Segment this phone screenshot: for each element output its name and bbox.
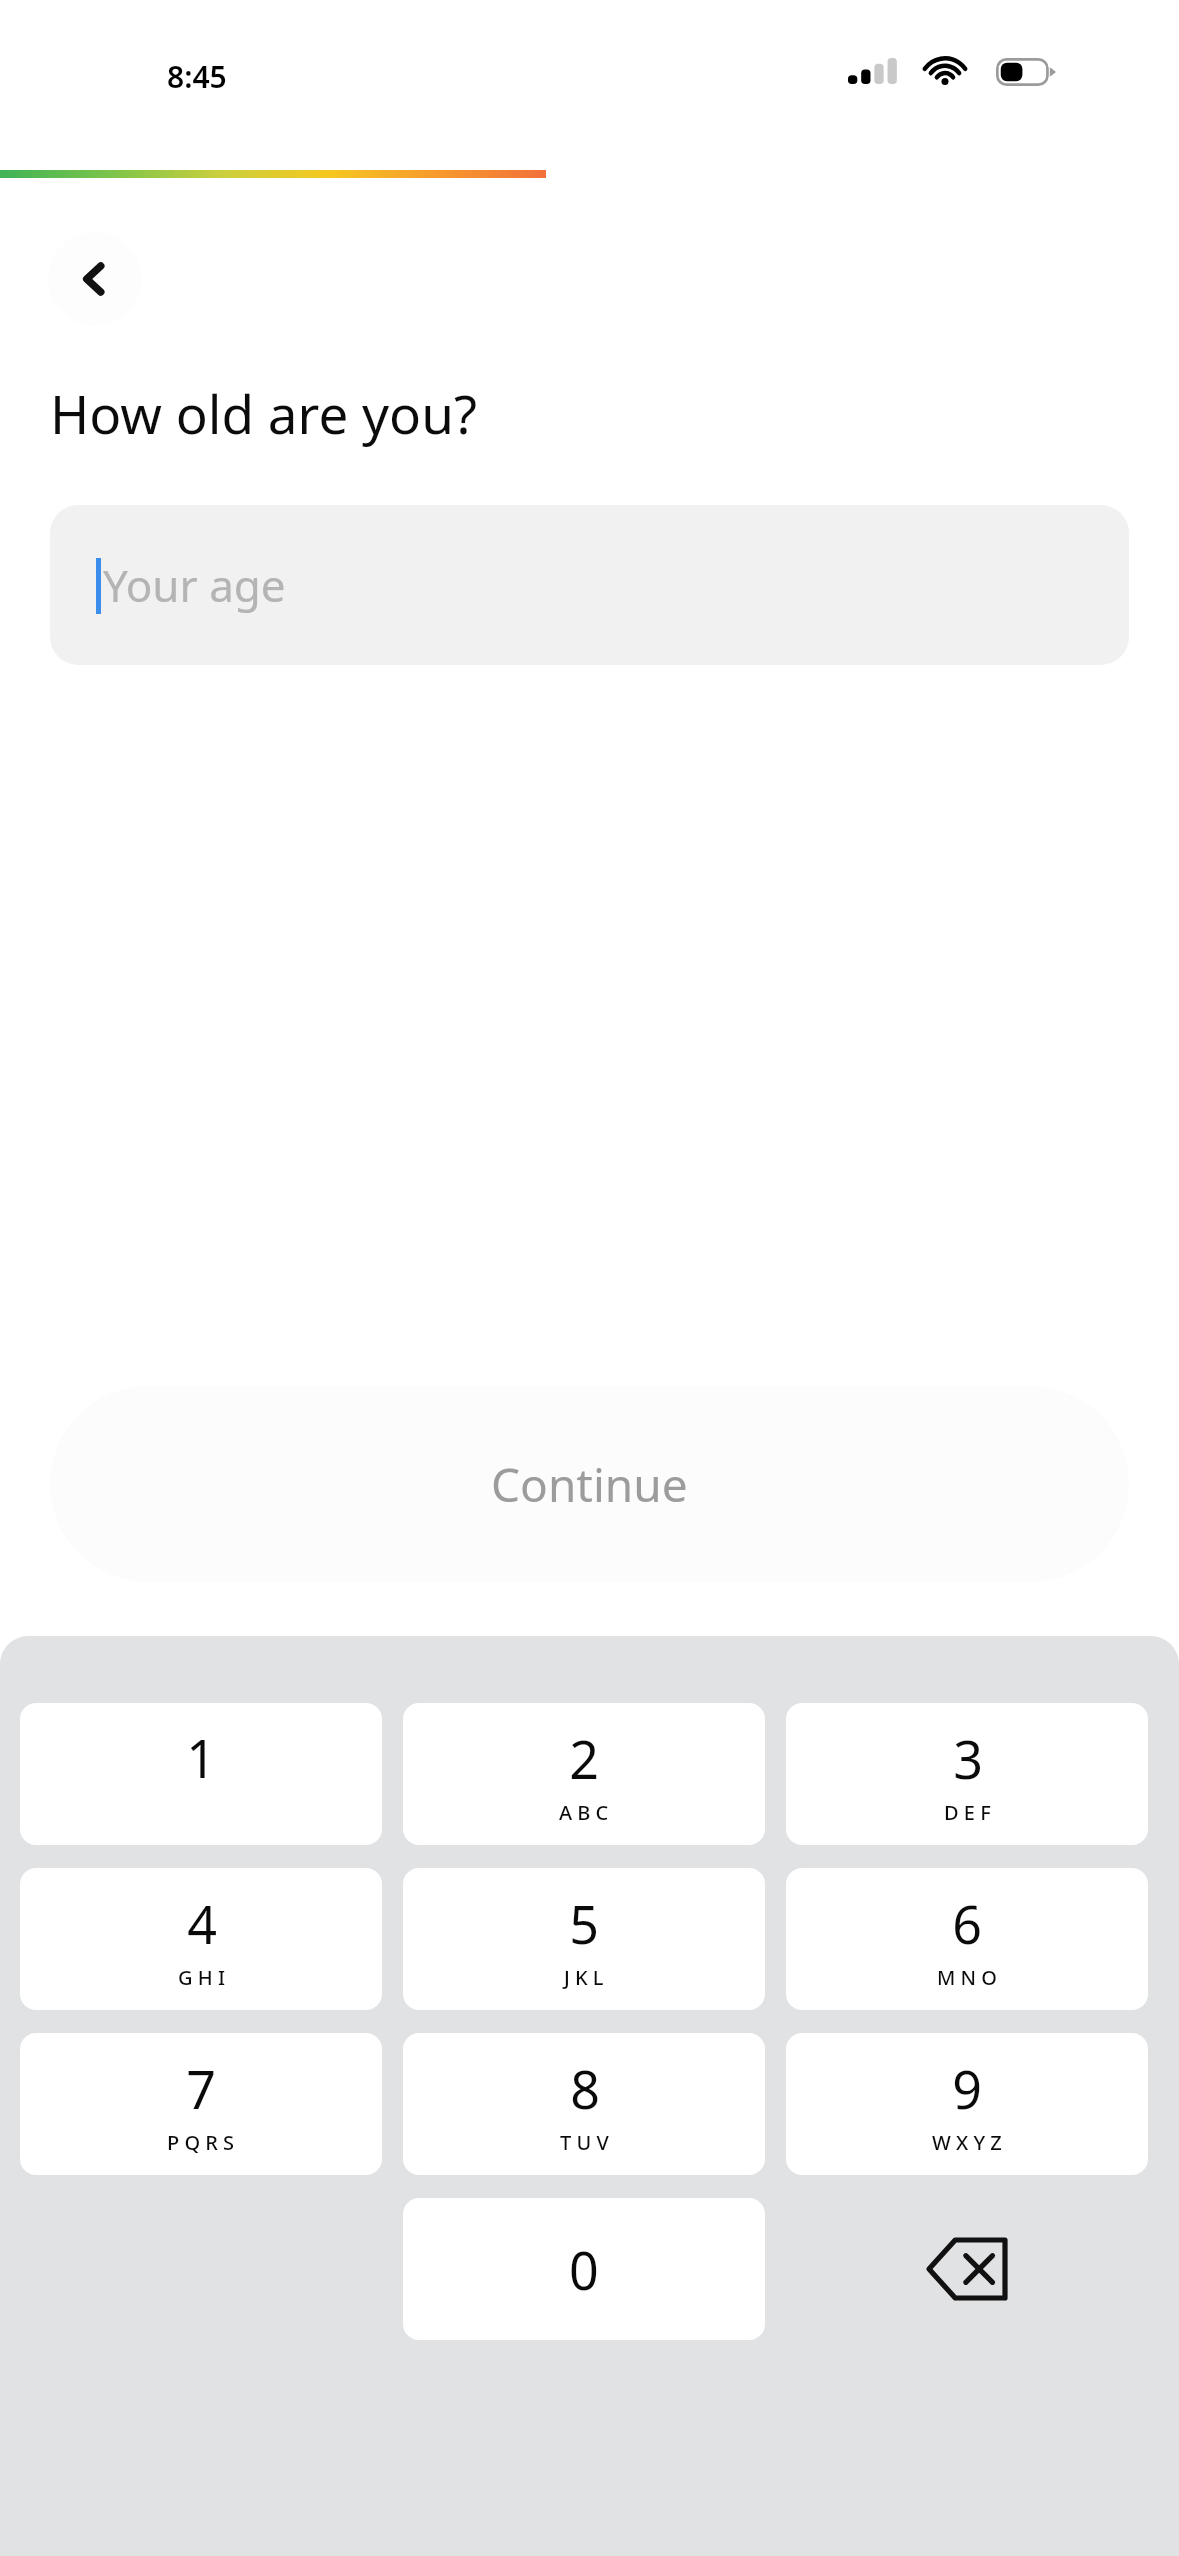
staticText: How old are you? [50, 377, 477, 449]
staticText: 8 [570, 2053, 600, 2124]
staticText: J K L [564, 1964, 604, 1991]
staticText: T U V [560, 2129, 609, 2156]
staticText: W X Y Z [932, 2129, 1002, 2156]
button[interactable]: 2 [403, 1703, 765, 1845]
staticText: M N O [937, 1964, 997, 1991]
button[interactable]: Backspace [786, 2198, 1148, 2340]
button[interactable]: 3 [786, 1703, 1148, 1845]
staticText: P Q R S [167, 2129, 235, 2156]
staticText: 1 [186, 1722, 216, 1793]
staticText: 4 [187, 1888, 217, 1959]
staticText: G H I [178, 1964, 225, 1991]
staticText: Continue [491, 1453, 688, 1516]
staticText: 8:45 [167, 56, 227, 97]
staticText: 6 [952, 1888, 982, 1959]
staticText: Your age [103, 555, 286, 615]
staticText: D E F [944, 1799, 991, 1826]
staticText: 7 [186, 2053, 216, 2124]
button[interactable]: 6 [786, 1868, 1148, 2010]
button[interactable]: 9 [786, 2033, 1148, 2175]
staticText: A B C [559, 1799, 609, 1826]
button[interactable]: 5 [403, 1868, 765, 2010]
staticText: 2 [569, 1723, 599, 1794]
staticText: 0 [569, 2234, 599, 2305]
button[interactable]: 4 [20, 1868, 382, 2010]
staticText: 5 [569, 1888, 599, 1959]
button[interactable]: Your age [50, 505, 1129, 665]
staticText: 9 [952, 2053, 982, 2124]
button[interactable]: Back [48, 232, 142, 326]
staticText: 3 [953, 1723, 983, 1794]
button[interactable]: 1 [20, 1703, 382, 1845]
button[interactable]: 7 [20, 2033, 382, 2175]
button[interactable]: Continue [50, 1386, 1129, 1582]
button[interactable]: 0 [403, 2198, 765, 2340]
button[interactable]: 8 [403, 2033, 765, 2175]
